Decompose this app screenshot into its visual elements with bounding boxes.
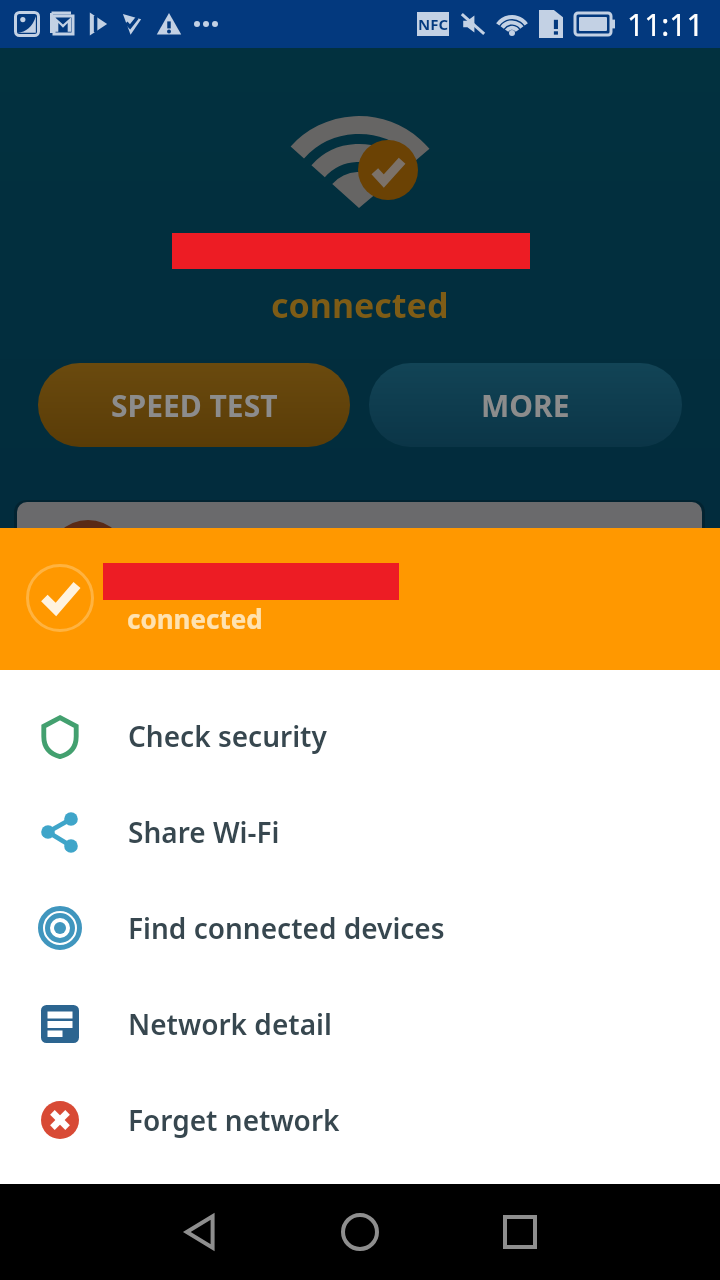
button[interactable]: SPEED TEST [38, 363, 350, 447]
button[interactable]: connected [0, 528, 720, 670]
staticText: connected [271, 282, 449, 328]
button[interactable]: MORE [369, 363, 682, 447]
button[interactable]: Find connected devices [0, 880, 720, 976]
button[interactable]: Network detail [0, 976, 720, 1072]
staticText: MORE [481, 385, 570, 426]
staticText: connected [127, 601, 263, 636]
staticText: 11:11 [627, 4, 704, 45]
staticText: Share Wi-Fi [128, 813, 280, 851]
button[interactable]: Share Wi-Fi [0, 784, 720, 880]
staticText: SPEED TEST [111, 385, 278, 426]
staticText: Network detail [128, 1005, 332, 1043]
button[interactable]: Back [160, 1184, 240, 1280]
button[interactable]: Home [320, 1184, 400, 1280]
button[interactable]: Check security [0, 688, 720, 784]
staticText: NFC [418, 14, 449, 34]
button[interactable]: Recents [480, 1184, 560, 1280]
staticText: Forget network [128, 1101, 340, 1139]
staticText: Check security [128, 717, 327, 755]
button[interactable]: Forget network [0, 1072, 720, 1168]
staticText: Find connected devices [128, 909, 445, 947]
